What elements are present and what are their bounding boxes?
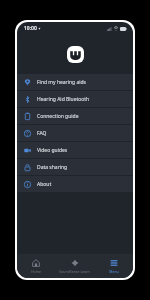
- button[interactable]: FAQ: [17, 125, 133, 141]
- staticText: Menu: [109, 269, 119, 274]
- button[interactable]: Hearing Aid Bluetooth: [17, 91, 133, 107]
- staticText: Home: [31, 269, 41, 274]
- staticText: 10:00: [24, 25, 37, 32]
- button[interactable]: SoundSense Learn: [55, 254, 94, 278]
- button[interactable]: Menu: [94, 254, 133, 278]
- staticText: Hearing Aid Bluetooth: [37, 96, 90, 103]
- button[interactable]: Connection guide: [17, 108, 133, 124]
- staticText: Find my hearing aids: [37, 79, 86, 86]
- staticText: Connection guide: [37, 113, 79, 120]
- staticText: SoundSense Learn: [59, 269, 90, 274]
- button[interactable]: Data sharing: [17, 159, 133, 175]
- button[interactable]: About: [17, 176, 133, 192]
- staticText: Data sharing: [37, 164, 68, 171]
- staticText: FAQ: [37, 130, 47, 137]
- button[interactable]: Find my hearing aids: [17, 74, 133, 90]
- staticText: About: [37, 181, 52, 188]
- staticText: Video guides: [37, 147, 68, 154]
- button[interactable]: Video guides: [17, 142, 133, 158]
- button[interactable]: Home: [17, 254, 55, 278]
